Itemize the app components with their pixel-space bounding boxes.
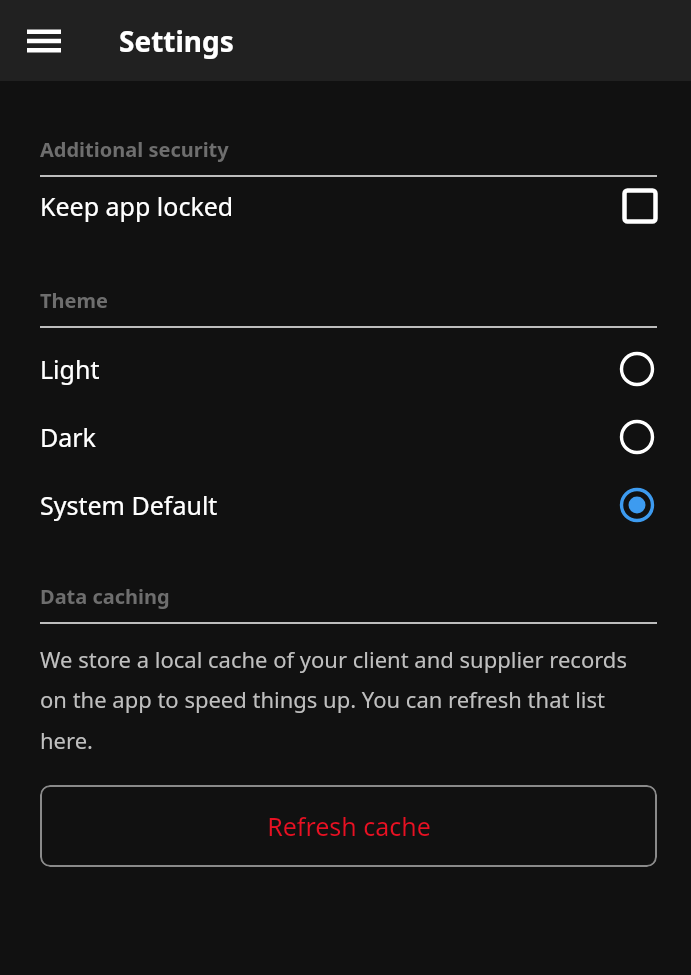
staticText: Keep app locked <box>40 189 234 223</box>
staticText: We store a local cache of your client an… <box>40 644 657 756</box>
staticText: Refresh cache <box>267 809 431 843</box>
staticText: Settings <box>119 22 234 60</box>
button[interactable]: Light <box>40 335 657 403</box>
button[interactable]: Keep app locked <box>40 177 657 235</box>
staticText: Additional security <box>40 136 229 163</box>
staticText: Data caching <box>40 583 170 610</box>
button[interactable]: Dark <box>40 403 657 471</box>
button[interactable]: System Default <box>40 471 657 539</box>
staticText: Theme <box>40 287 108 314</box>
staticText: Light <box>40 352 100 386</box>
staticText: Dark <box>40 420 96 454</box>
button[interactable]: Open navigation menu <box>14 11 74 71</box>
button[interactable]: Refresh cache <box>40 785 657 867</box>
staticText: System Default <box>40 488 218 522</box>
